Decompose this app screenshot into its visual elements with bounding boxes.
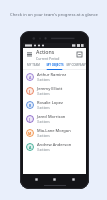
- staticText: 3 actions: [37, 134, 50, 138]
- button[interactable]: MY TEAM: [23, 61, 44, 69]
- staticText: M: [28, 131, 32, 136]
- button[interactable]: Back: [34, 177, 39, 182]
- button[interactable]: A: [23, 70, 86, 84]
- staticText: 3 actions: [37, 92, 50, 96]
- button[interactable]: MY COMPANY: [65, 61, 86, 69]
- staticText: Arthur Ramirez: [37, 72, 67, 77]
- staticText: Jeremy Elliott: [37, 86, 63, 91]
- button[interactable]: J: [23, 84, 86, 98]
- staticText: 3 actions: [37, 106, 50, 110]
- button[interactable]: Recents: [71, 177, 76, 182]
- button[interactable]: A: [23, 140, 86, 154]
- button[interactable]: More options: [76, 51, 83, 58]
- staticText: Actions: [36, 48, 55, 55]
- button[interactable]: R: [23, 98, 86, 112]
- staticText: R: [29, 103, 32, 108]
- button[interactable]: Open navigation menu: [26, 51, 33, 58]
- button[interactable]: MY OBJECTS: [44, 61, 65, 69]
- staticText: A: [29, 145, 32, 150]
- staticText: 3 actions: [37, 120, 50, 124]
- button[interactable]: M: [23, 126, 86, 140]
- staticText: Current Period: [36, 56, 60, 61]
- staticText: J: [29, 117, 31, 122]
- staticText: 3 actions: [37, 148, 50, 152]
- staticText: Mia-Lane Morgan: [37, 128, 71, 133]
- staticText: Andrew Anderson: [37, 142, 72, 147]
- staticText: Jared Morrison: [37, 114, 66, 119]
- staticText: MY OBJECTS: [46, 63, 64, 67]
- staticText: J: [29, 89, 31, 94]
- staticText: MY COMPANY: [66, 63, 86, 67]
- staticText: Check in on your team's progress at a gl…: [10, 12, 98, 18]
- staticText: A: [29, 75, 32, 80]
- staticText: Rosalie Lopez: [37, 100, 63, 105]
- button[interactable]: J: [23, 112, 86, 126]
- button[interactable]: Home: [52, 177, 57, 182]
- staticText: 3 actions: [37, 78, 50, 82]
- staticText: MY TEAM: [27, 63, 40, 67]
